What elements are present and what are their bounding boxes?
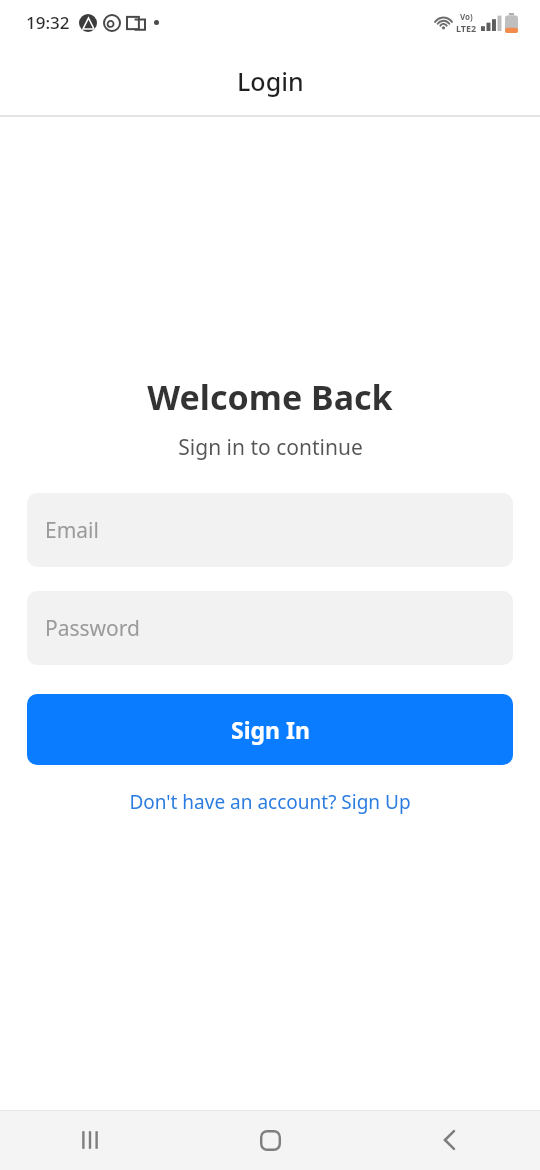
staticText: Password bbox=[45, 614, 140, 643]
staticText: Welcome Back bbox=[147, 374, 393, 420]
staticText: LTE2 bbox=[456, 22, 477, 34]
staticText: Login bbox=[237, 64, 304, 98]
button[interactable]: Back bbox=[360, 1110, 540, 1170]
staticText: Sign In bbox=[231, 714, 310, 745]
button[interactable]: Sign In bbox=[27, 694, 513, 765]
staticText: Vo) bbox=[460, 11, 473, 22]
staticText: Don't have an account? Sign Up bbox=[129, 789, 411, 815]
button[interactable]: Don't have an account? Sign Up bbox=[27, 784, 513, 820]
button[interactable]: Email bbox=[27, 493, 513, 567]
staticText: Email bbox=[45, 516, 99, 545]
button[interactable]: Password bbox=[27, 591, 513, 665]
staticText: 19:32 bbox=[26, 11, 70, 34]
button[interactable]: Home bbox=[180, 1110, 360, 1170]
staticText: Sign in to continue bbox=[178, 433, 363, 462]
button[interactable]: Recent apps bbox=[0, 1110, 180, 1170]
